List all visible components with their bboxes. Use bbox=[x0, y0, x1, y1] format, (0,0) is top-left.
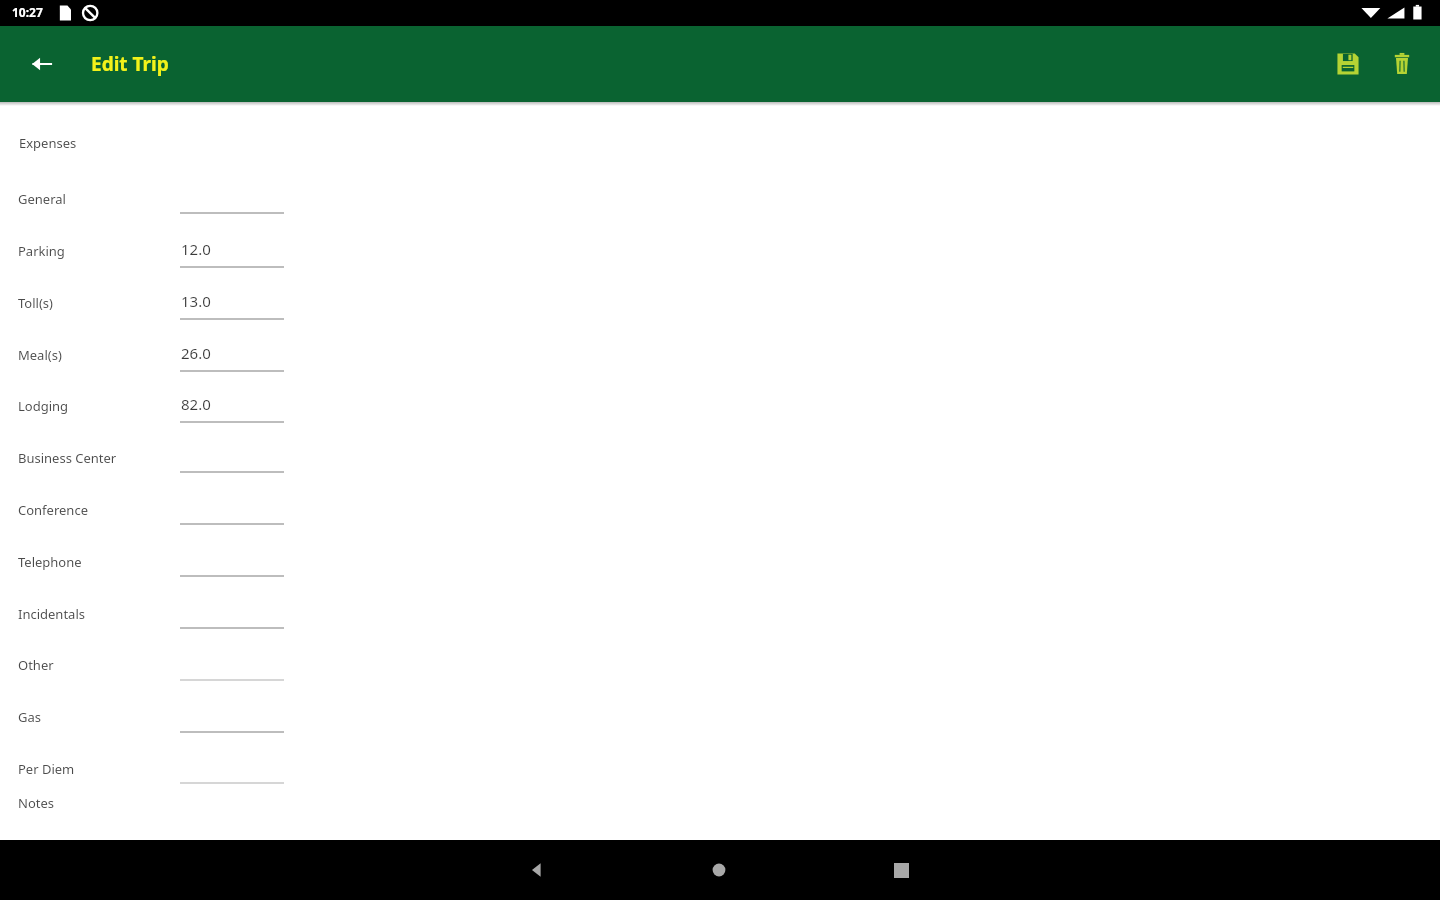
staticText: Expenses bbox=[19, 134, 77, 152]
staticText: Parking bbox=[18, 242, 65, 260]
button[interactable] bbox=[0, 646, 300, 686]
staticText: Telephone bbox=[18, 553, 82, 571]
staticText: 82.0 bbox=[181, 394, 211, 414]
staticText: 13.0 bbox=[181, 291, 211, 311]
button[interactable]: Home bbox=[695, 846, 743, 894]
button[interactable] bbox=[0, 543, 300, 583]
button[interactable]: Back bbox=[513, 846, 561, 894]
staticText: Gas bbox=[18, 708, 41, 726]
staticText: Lodging bbox=[18, 397, 69, 415]
button[interactable] bbox=[0, 784, 300, 820]
staticText: Edit Trip bbox=[91, 51, 169, 77]
staticText: Business Center bbox=[18, 449, 117, 467]
staticText: Meal(s) bbox=[18, 346, 62, 364]
button[interactable]: Recent apps bbox=[877, 846, 925, 894]
button[interactable]: Back bbox=[18, 40, 66, 88]
staticText: General bbox=[18, 190, 66, 208]
button[interactable] bbox=[0, 750, 300, 790]
button[interactable] bbox=[0, 698, 300, 738]
staticText: Other bbox=[18, 656, 54, 674]
staticText: 10:27 bbox=[12, 4, 43, 20]
button[interactable] bbox=[0, 491, 300, 531]
button[interactable]: Delete bbox=[1378, 40, 1426, 88]
staticText: Toll(s) bbox=[18, 294, 53, 312]
staticText: 12.0 bbox=[181, 239, 211, 259]
staticText: Conference bbox=[18, 501, 88, 519]
button[interactable] bbox=[0, 284, 300, 324]
button[interactable]: Save bbox=[1324, 40, 1372, 88]
button[interactable] bbox=[0, 232, 300, 272]
button[interactable] bbox=[0, 387, 300, 427]
staticText: Notes bbox=[18, 794, 54, 812]
button[interactable] bbox=[0, 439, 300, 479]
staticText: 26.0 bbox=[181, 343, 211, 363]
staticText: Incidentals bbox=[18, 605, 85, 623]
button[interactable] bbox=[0, 336, 300, 376]
button[interactable] bbox=[0, 595, 300, 635]
button[interactable] bbox=[0, 180, 300, 220]
staticText: Per Diem bbox=[18, 760, 75, 778]
